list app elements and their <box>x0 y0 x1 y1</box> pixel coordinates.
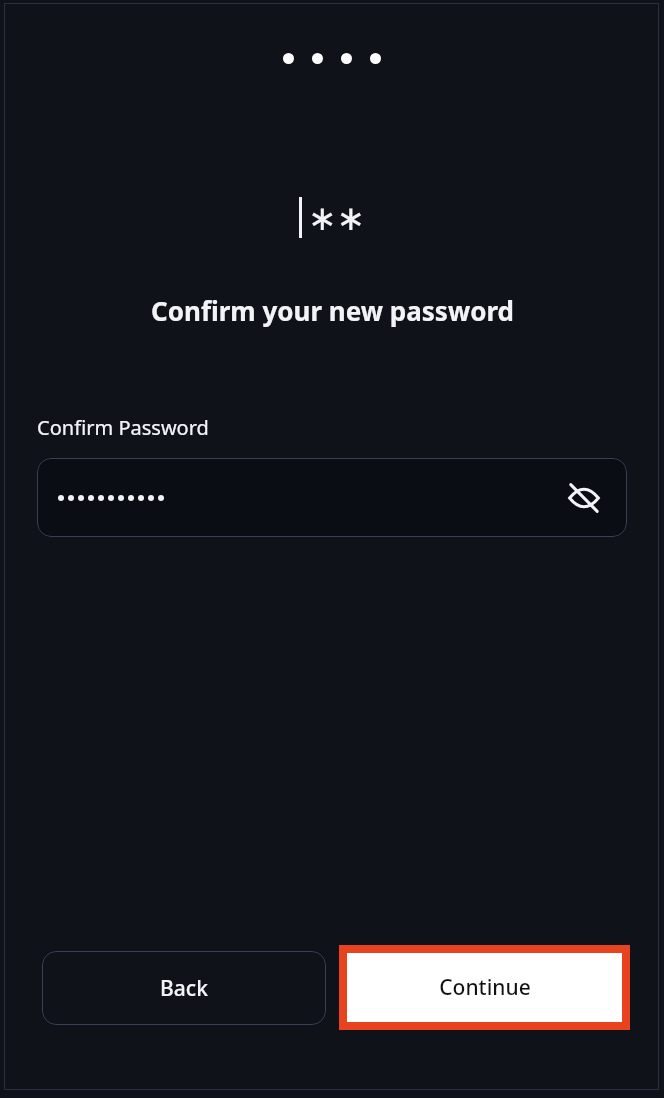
button[interactable]: Hide password <box>561 475 607 521</box>
staticText: Continue <box>439 973 531 1002</box>
staticText: ∗∗ <box>308 198 365 238</box>
button[interactable]: Hide password <box>37 458 627 537</box>
staticText: Confirm your new password <box>151 293 514 328</box>
button[interactable]: Continue <box>347 953 622 1022</box>
staticText: Back <box>160 974 208 1003</box>
button[interactable]: Back <box>42 951 326 1025</box>
staticText: Confirm Password <box>37 414 209 441</box>
